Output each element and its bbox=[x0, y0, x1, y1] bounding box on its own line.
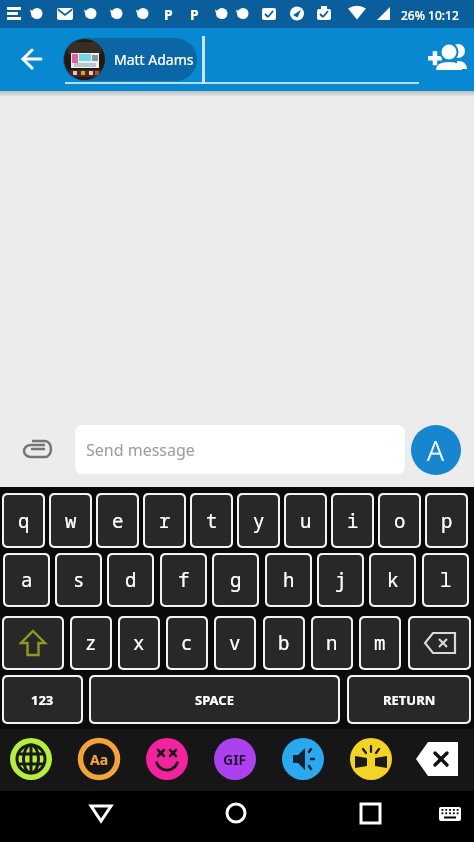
button[interactable]: 123 bbox=[4, 677, 81, 722]
staticText: l bbox=[440, 567, 452, 593]
staticText: s bbox=[73, 567, 85, 593]
button[interactable] bbox=[4, 618, 62, 668]
staticText: SPACE bbox=[195, 691, 234, 709]
button[interactable]: n bbox=[313, 618, 351, 668]
button[interactable] bbox=[158, 791, 316, 842]
staticText: f bbox=[178, 567, 190, 593]
button[interactable]: q bbox=[4, 495, 43, 546]
button[interactable]: A bbox=[411, 425, 461, 475]
button[interactable]: w bbox=[51, 495, 90, 546]
button[interactable]: k bbox=[371, 555, 414, 605]
button[interactable] bbox=[10, 738, 52, 780]
staticText: P bbox=[164, 5, 173, 24]
staticText: c bbox=[181, 630, 193, 656]
staticText: k bbox=[387, 567, 399, 593]
button[interactable]: x bbox=[120, 618, 158, 668]
button[interactable]: Send message bbox=[75, 425, 405, 474]
staticText: n bbox=[326, 630, 338, 656]
button[interactable]: Aa bbox=[78, 738, 120, 780]
staticText: Matt Adams bbox=[114, 50, 194, 69]
staticText: GIF bbox=[223, 750, 247, 769]
staticText: j bbox=[335, 567, 347, 593]
button[interactable] bbox=[316, 791, 474, 842]
staticText: e bbox=[112, 508, 124, 534]
staticText: y bbox=[253, 508, 265, 534]
button[interactable]: i bbox=[333, 495, 372, 546]
button[interactable]: t bbox=[192, 495, 231, 546]
button[interactable] bbox=[410, 618, 469, 668]
button[interactable] bbox=[282, 738, 324, 780]
staticText: b bbox=[278, 630, 290, 656]
button[interactable]: c bbox=[168, 618, 206, 668]
staticText: u bbox=[300, 508, 312, 534]
staticText: 123 bbox=[31, 691, 54, 709]
staticText: i bbox=[347, 508, 359, 534]
button[interactable] bbox=[146, 738, 188, 780]
staticText: Aa bbox=[90, 750, 109, 769]
staticText: p bbox=[441, 508, 453, 534]
button[interactable]: r bbox=[145, 495, 184, 546]
staticText: x bbox=[133, 630, 145, 656]
button[interactable]: m bbox=[361, 618, 399, 668]
staticText: 26% 10:12 bbox=[401, 7, 459, 23]
staticText: h bbox=[283, 567, 295, 593]
button[interactable]: RETURN bbox=[349, 677, 469, 722]
staticText: A bbox=[427, 431, 445, 469]
button[interactable]: z bbox=[72, 618, 110, 668]
staticText: o bbox=[394, 508, 406, 534]
button[interactable]: GIF bbox=[214, 738, 256, 780]
button[interactable]: d bbox=[109, 555, 152, 605]
staticText: RETURN bbox=[383, 691, 436, 709]
button[interactable]: u bbox=[286, 495, 325, 546]
button[interactable] bbox=[0, 791, 158, 842]
button[interactable]: SPACE bbox=[91, 677, 338, 722]
button[interactable] bbox=[350, 738, 392, 780]
button[interactable]: Matt Adams bbox=[63, 38, 197, 81]
button[interactable]: e bbox=[98, 495, 137, 546]
staticText: d bbox=[125, 567, 137, 593]
staticText: z bbox=[85, 630, 97, 656]
staticText: g bbox=[230, 567, 242, 593]
button[interactable]: g bbox=[214, 555, 257, 605]
button[interactable]: p bbox=[427, 495, 466, 546]
button[interactable]: v bbox=[216, 618, 254, 668]
staticText: P bbox=[190, 5, 199, 24]
staticText: q bbox=[18, 508, 30, 534]
button[interactable]: f bbox=[162, 555, 205, 605]
button[interactable]: j bbox=[319, 555, 362, 605]
button[interactable]: y bbox=[239, 495, 278, 546]
button[interactable] bbox=[424, 36, 470, 82]
staticText: v bbox=[229, 630, 241, 656]
staticText: Send message bbox=[86, 439, 195, 461]
staticText: w bbox=[65, 508, 77, 534]
staticText: r bbox=[159, 508, 171, 534]
button[interactable]: l bbox=[424, 555, 467, 605]
button[interactable]: o bbox=[380, 495, 419, 546]
staticText: t bbox=[206, 508, 218, 534]
button[interactable]: b bbox=[265, 618, 303, 668]
staticText: m bbox=[374, 630, 386, 656]
button[interactable]: a bbox=[5, 555, 48, 605]
staticText: a bbox=[21, 567, 33, 593]
button[interactable] bbox=[0, 28, 56, 91]
button[interactable]: h bbox=[267, 555, 310, 605]
button[interactable] bbox=[15, 426, 59, 470]
button[interactable] bbox=[414, 740, 460, 778]
button[interactable]: s bbox=[57, 555, 100, 605]
